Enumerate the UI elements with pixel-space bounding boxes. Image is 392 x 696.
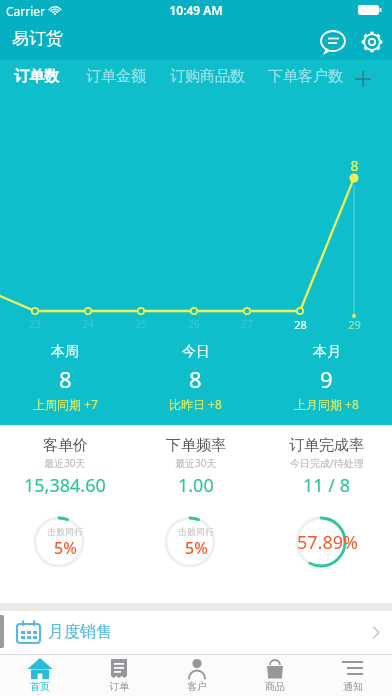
staticText: 15,384.60 bbox=[24, 473, 106, 498]
staticText: 订单 bbox=[109, 680, 129, 693]
button[interactable] bbox=[318, 28, 350, 58]
staticText: 易订货 bbox=[12, 28, 63, 49]
staticText: 26 bbox=[188, 317, 200, 331]
staticText: 客单价 bbox=[43, 436, 88, 455]
staticText: 24 bbox=[82, 317, 94, 331]
staticText: 今日 bbox=[182, 343, 210, 361]
staticText: 9 bbox=[320, 364, 333, 394]
staticText: 客户 bbox=[187, 680, 207, 693]
staticText: 上周同期 +7 bbox=[33, 396, 98, 412]
staticText: 击败同行 bbox=[178, 526, 214, 537]
staticText: 本月 bbox=[313, 343, 341, 361]
staticText: 比昨日 +8 bbox=[169, 396, 222, 412]
staticText: 29 bbox=[348, 317, 361, 331]
button[interactable]: 订单数 bbox=[10, 64, 62, 88]
staticText: 8 bbox=[189, 364, 202, 394]
staticText: 首页 bbox=[30, 680, 50, 693]
staticText: 最近30天 bbox=[44, 456, 86, 470]
staticText: 订单金额 bbox=[86, 67, 146, 86]
staticText: 上月同期 +8 bbox=[294, 396, 359, 412]
staticText: 8 bbox=[350, 156, 359, 174]
staticText: 57.89% bbox=[297, 530, 358, 555]
staticText: 8 bbox=[59, 364, 72, 394]
staticText: 订购商品数 bbox=[170, 67, 245, 86]
staticText: 下单频率 bbox=[166, 436, 226, 455]
button[interactable]: 商品 bbox=[236, 654, 314, 696]
staticText: 击败同行 bbox=[47, 526, 83, 537]
staticText: Carrier bbox=[6, 3, 46, 19]
staticText: 通知 bbox=[343, 680, 363, 693]
staticText: 1.00 bbox=[178, 473, 214, 498]
staticText: 23 bbox=[29, 317, 41, 331]
staticText: 本周 bbox=[51, 343, 79, 361]
staticText: 下单客户数 bbox=[268, 67, 343, 86]
staticText: 5% bbox=[54, 537, 77, 559]
button[interactable] bbox=[350, 66, 378, 92]
staticText: 月度销售 bbox=[48, 622, 112, 642]
staticText: 5% bbox=[185, 537, 208, 559]
staticText: 订单完成率 bbox=[289, 436, 364, 455]
button[interactable]: 客户 bbox=[158, 654, 236, 696]
staticText: 27 bbox=[241, 317, 253, 331]
staticText: 11 / 8 bbox=[303, 473, 350, 498]
button[interactable] bbox=[358, 28, 386, 58]
button[interactable]: 首页 bbox=[0, 654, 79, 696]
button[interactable]: 下单客户数 bbox=[265, 64, 345, 88]
staticText: 今日完成/待处理 bbox=[290, 456, 364, 470]
button[interactable]: 订单金额 bbox=[84, 64, 148, 88]
staticText: 订单数 bbox=[14, 67, 59, 86]
button[interactable]: 通知 bbox=[314, 654, 392, 696]
staticText: 25 bbox=[135, 317, 147, 331]
button[interactable]: 订单 bbox=[79, 654, 158, 696]
button[interactable]: 月度销售 bbox=[0, 611, 392, 653]
staticText: 最近30天 bbox=[175, 456, 217, 470]
button[interactable]: 订购商品数 bbox=[167, 64, 247, 88]
staticText: 商品 bbox=[265, 680, 285, 693]
staticText: 10:49 AM bbox=[169, 2, 223, 18]
staticText: 28 bbox=[294, 317, 307, 331]
